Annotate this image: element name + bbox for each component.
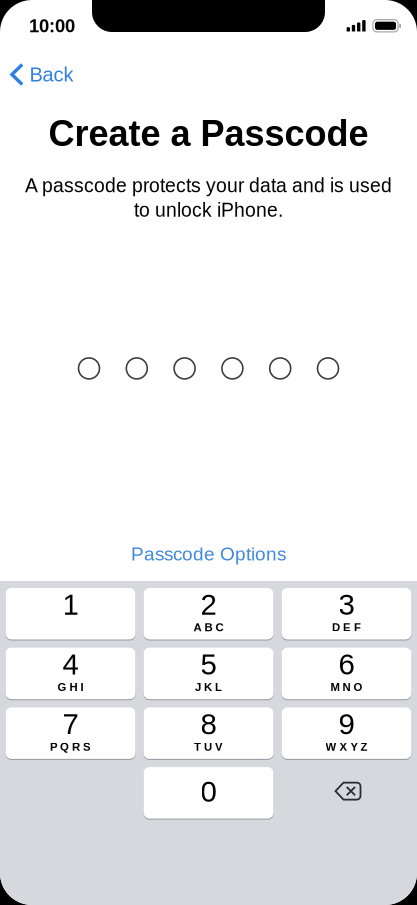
staticText: P Q R S [50, 740, 91, 753]
button[interactable]: 1 [5, 588, 135, 639]
button[interactable]: Passcode Options [0, 535, 417, 573]
staticText: to unlock iPhone. [134, 199, 283, 221]
staticText: M N O [330, 681, 362, 693]
staticText: 3 [338, 588, 354, 621]
button[interactable]: 9 [281, 707, 411, 759]
staticText: 7 [62, 708, 78, 740]
staticText: J K L [195, 681, 222, 693]
staticText: 8 [200, 708, 216, 740]
staticText: D E F [332, 621, 361, 634]
staticText: 1 [62, 588, 78, 621]
staticText: 9 [338, 708, 354, 740]
button[interactable]: 3 [281, 588, 411, 639]
staticText: 10:00 [29, 15, 75, 36]
button[interactable]: 6 [281, 648, 411, 699]
button[interactable]: 7 [5, 707, 135, 759]
staticText: Back [29, 63, 73, 86]
button[interactable]: 0 [143, 767, 273, 819]
staticText: 5 [200, 648, 216, 681]
button[interactable]: Delete [281, 767, 411, 819]
button[interactable]: 8 [143, 707, 273, 759]
staticText: 6 [338, 648, 354, 681]
staticText: Passcode Options [131, 543, 286, 565]
staticText: W X Y Z [325, 740, 367, 753]
staticText: A B C [193, 621, 223, 634]
staticText: 2 [200, 588, 216, 621]
button[interactable]: 4 [5, 648, 135, 699]
staticText: G H I [57, 681, 83, 693]
staticText: A passcode protects your data and is use… [25, 175, 392, 196]
staticText: 4 [62, 648, 78, 681]
staticText: Create a Passcode [48, 113, 368, 154]
button[interactable]: 2 [143, 588, 273, 639]
staticText: 0 [200, 775, 216, 808]
button[interactable]: Back [0, 53, 417, 96]
staticText: T U V [194, 740, 223, 753]
button[interactable]: 5 [143, 648, 273, 699]
